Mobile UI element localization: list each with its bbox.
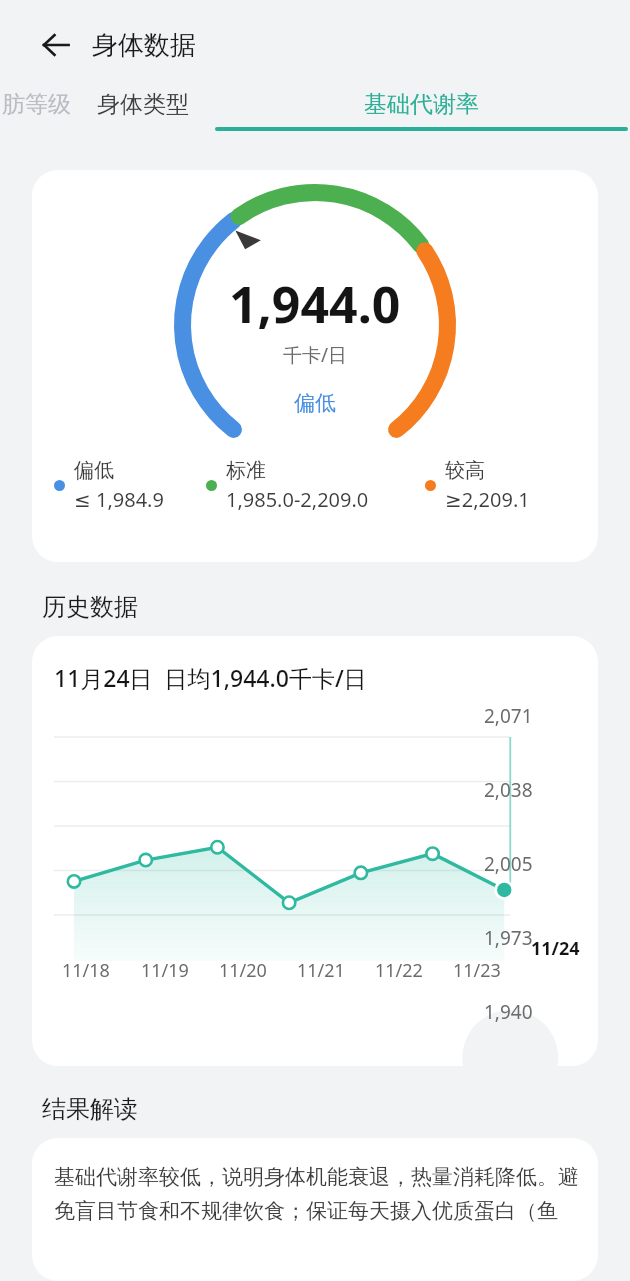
staticText: 1,973 [484,925,533,951]
staticText: 1,985.0-2,209.0 [226,486,369,513]
staticText: 身体类型 [97,90,189,119]
staticText: 11/22 [375,958,423,983]
staticText: 身体数据 [92,29,196,62]
staticText: 结果解读 [42,1094,138,1124]
staticText: 标准 [226,458,266,483]
staticText: 基础代谢率 [364,90,479,119]
staticText: ≥2,209.1 [445,486,530,513]
staticText: 千卡/日 [283,342,348,368]
staticText: 11/23 [453,958,501,983]
staticText: 1,940 [484,999,533,1025]
button[interactable]: 身体类型 [95,90,191,127]
staticText: 肪等级 [2,90,71,119]
staticText: 偏低 [294,390,336,416]
staticText: 11/19 [141,958,189,983]
staticText: 2,071 [484,703,533,729]
staticText: 11/24 [531,936,580,961]
staticText: 2,038 [484,777,533,803]
button[interactable]: 基础代谢率 [213,90,630,131]
staticText: 基础代谢率较低，说明身体机能衰退，热量消耗降低。避免盲目节食和不规律饮食；保证每… [54,1164,580,1225]
button[interactable]: Back [30,19,82,71]
staticText: 1,944.0 [229,270,401,338]
staticText: 11/20 [219,958,267,983]
staticText: ≤ 1,984.9 [74,486,164,513]
staticText: 历史数据 [42,592,138,622]
staticText: 11月24日 日均1,944.0千卡/日 [54,662,367,693]
staticText: 11/18 [62,958,110,983]
staticText: 2,005 [484,851,533,877]
staticText: 偏低 [74,458,114,483]
staticText: 较高 [445,458,485,483]
staticText: 11/21 [297,958,345,983]
button[interactable]: 肪等级 [0,90,73,127]
